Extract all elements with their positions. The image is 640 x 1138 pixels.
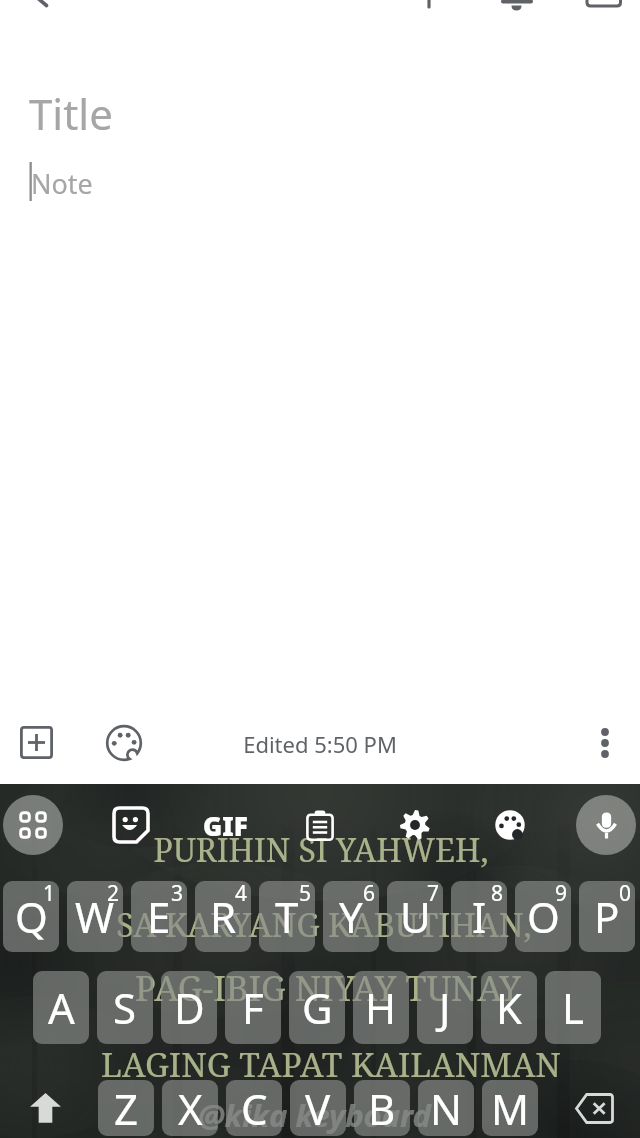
- staticText: N: [430, 1080, 462, 1136]
- staticText: 6: [363, 881, 376, 908]
- staticText: @kika keyboard: [198, 1094, 431, 1136]
- staticText: R: [210, 888, 237, 945]
- button[interactable]: N: [418, 1080, 474, 1136]
- button[interactable]: R: [195, 881, 251, 952]
- button[interactable]: V: [290, 1080, 346, 1136]
- staticText: 7: [427, 881, 440, 908]
- staticText: 3: [171, 881, 184, 908]
- button[interactable]: Remind me: [489, 0, 545, 18]
- staticText: Title: [29, 85, 113, 142]
- staticText: A: [48, 979, 75, 1036]
- staticText: 1: [43, 881, 56, 908]
- staticText: Z: [114, 1080, 139, 1136]
- button[interactable]: Z: [98, 1080, 154, 1136]
- button[interactable]: B: [354, 1080, 410, 1136]
- staticText: Note: [31, 165, 93, 202]
- staticText: O: [527, 888, 560, 945]
- button[interactable]: More options: [576, 714, 633, 771]
- staticText: I: [472, 888, 487, 945]
- button[interactable]: G: [289, 971, 345, 1044]
- staticText: M: [491, 1080, 530, 1136]
- button[interactable]: Backspace: [566, 1080, 623, 1136]
- button[interactable]: A: [33, 971, 89, 1044]
- staticText: 0: [619, 881, 632, 908]
- staticText: 4: [235, 881, 248, 908]
- button[interactable]: W: [67, 881, 123, 952]
- button[interactable]: Keyboard tool: [387, 797, 443, 853]
- button[interactable]: H: [353, 971, 409, 1044]
- button[interactable]: Q: [3, 881, 59, 952]
- staticText: G: [302, 979, 333, 1036]
- button[interactable]: Keyboard menu: [3, 795, 63, 855]
- button[interactable]: Archive: [576, 0, 632, 18]
- button[interactable]: U: [387, 881, 443, 952]
- staticText: Q: [15, 888, 48, 945]
- button[interactable]: GIF: [197, 797, 253, 853]
- staticText: 8: [491, 881, 504, 908]
- staticText: F: [242, 979, 264, 1036]
- staticText: J: [439, 979, 451, 1036]
- button[interactable]: Voice input: [576, 795, 636, 855]
- button[interactable]: Shift: [17, 1080, 74, 1136]
- button[interactable]: F: [225, 971, 281, 1044]
- button[interactable]: M: [482, 1080, 538, 1136]
- staticText: U: [400, 888, 431, 945]
- button[interactable]: X: [162, 1080, 218, 1136]
- staticText: S: [113, 979, 137, 1036]
- staticText: X: [178, 1080, 203, 1136]
- button[interactable]: I: [451, 881, 507, 952]
- button[interactable]: D: [161, 971, 217, 1044]
- button[interactable]: Keyboard tool: [292, 797, 348, 853]
- button[interactable]: T: [259, 881, 315, 952]
- button[interactable]: Y: [323, 881, 379, 952]
- staticText: SA KARYANG KABUTIHAN,: [4, 902, 640, 946]
- staticText: V: [305, 1080, 331, 1136]
- staticText: 9: [555, 881, 568, 908]
- staticText: H: [365, 979, 397, 1036]
- staticText: T: [275, 888, 299, 945]
- staticText: Y: [339, 888, 363, 945]
- staticText: PURIHIN SI YAHWEH,: [1, 828, 640, 872]
- staticText: Edited 5:50 PM: [0, 729, 640, 759]
- staticText: W: [75, 888, 115, 945]
- button[interactable]: Add: [8, 714, 65, 771]
- button[interactable]: K: [481, 971, 537, 1044]
- button[interactable]: S: [97, 971, 153, 1044]
- button[interactable]: P: [579, 881, 635, 952]
- button[interactable]: Navigate up: [16, 0, 72, 18]
- staticText: PAG-IBIG NIYAY TUNAY: [8, 964, 640, 1011]
- staticText: L: [562, 979, 585, 1036]
- staticText: C: [241, 1080, 268, 1136]
- staticText: 2: [107, 881, 120, 908]
- staticText: K: [496, 979, 522, 1036]
- staticText: LAGING TAPAT KAILANMAN: [11, 1041, 640, 1087]
- staticText: E: [147, 888, 171, 945]
- staticText: GIF: [203, 808, 248, 843]
- staticText: B: [368, 1080, 396, 1136]
- button[interactable]: L: [545, 971, 601, 1044]
- button[interactable]: Keyboard tool: [482, 797, 538, 853]
- button[interactable]: E: [131, 881, 187, 952]
- button[interactable]: Background options: [95, 714, 152, 771]
- button[interactable]: Pin note: [401, 0, 457, 18]
- staticText: D: [174, 979, 205, 1036]
- staticText: P: [594, 888, 620, 945]
- button[interactable]: J: [417, 971, 473, 1044]
- button[interactable]: Keyboard tool: [103, 797, 159, 853]
- button[interactable]: C: [226, 1080, 282, 1136]
- button[interactable]: O: [515, 881, 571, 952]
- staticText: 5: [299, 881, 312, 908]
